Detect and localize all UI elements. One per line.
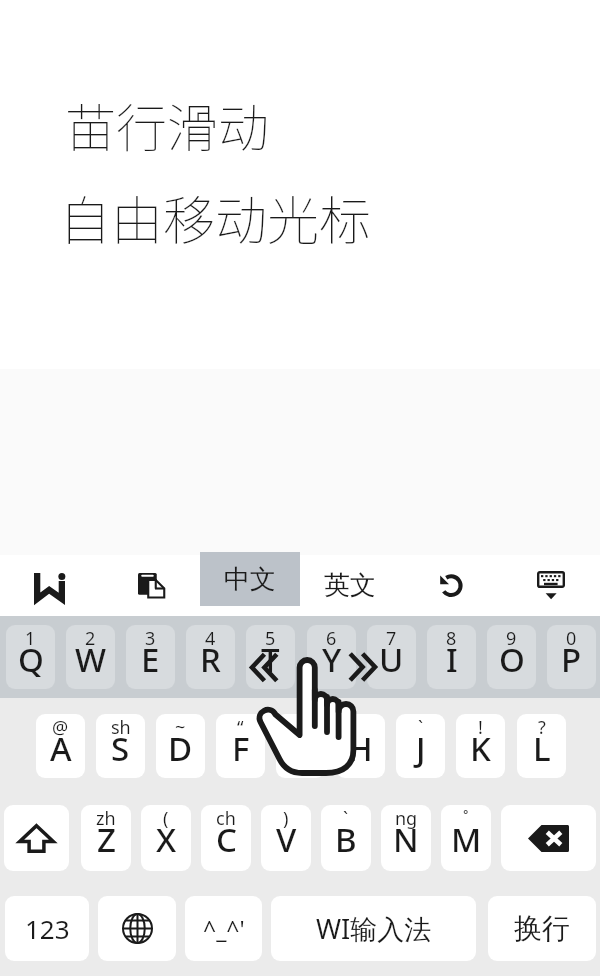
button[interactable]: @ [36, 714, 85, 778]
staticText: S [111, 726, 130, 771]
button[interactable]: 7 [367, 625, 416, 689]
staticText: ˚ [463, 806, 469, 831]
staticText: 苗行滑动 [65, 88, 270, 162]
button[interactable]: 4 [186, 625, 235, 689]
staticText: 0 [566, 626, 577, 651]
staticText: C [216, 817, 237, 862]
staticText: sh [111, 715, 131, 740]
button[interactable]: 中文 [200, 552, 300, 606]
staticText: WI输入法 [316, 910, 432, 947]
button[interactable]: ? [517, 714, 566, 778]
button[interactable]: 1 [6, 625, 55, 689]
staticText: E [141, 637, 160, 682]
staticText: I [446, 637, 458, 682]
staticText: K [470, 726, 491, 771]
button[interactable]: ^_^' [185, 896, 262, 961]
button[interactable]: 9 [487, 625, 536, 689]
staticText: A [50, 726, 72, 771]
staticText: L [533, 726, 551, 771]
button[interactable]: 8 [427, 625, 476, 689]
staticText: 4 [205, 626, 216, 651]
staticText: ^_^' [203, 913, 245, 944]
button[interactable]: ~ [156, 714, 205, 778]
staticText: D [168, 726, 193, 771]
staticText: M [451, 817, 482, 862]
staticText: ? [538, 715, 546, 740]
staticText: 1 [25, 626, 36, 651]
staticText: Q [18, 637, 44, 682]
button[interactable]: Clipboard [120, 555, 182, 616]
staticText: Z [97, 817, 116, 862]
staticText: U [379, 637, 404, 682]
button[interactable]: “ [216, 714, 265, 778]
button[interactable]: 3 [126, 625, 175, 689]
button[interactable]: zh [81, 805, 131, 871]
staticText: ng [395, 806, 418, 831]
button[interactable]: 6 [307, 625, 356, 689]
button[interactable]: ‘ [276, 714, 325, 778]
staticText: B [335, 817, 357, 862]
button[interactable]: Hide keyboard [520, 555, 582, 616]
staticText: ch [216, 806, 236, 831]
staticText: H [348, 726, 373, 771]
staticText: R [200, 637, 221, 682]
button[interactable]: WI输入法 [271, 896, 476, 961]
button[interactable]: ˋ [396, 714, 445, 778]
staticText: 中文 [224, 563, 276, 596]
staticText: ‘ [299, 715, 303, 740]
staticText: W [75, 637, 107, 682]
staticText: O [499, 637, 525, 682]
staticText: X [156, 817, 177, 862]
staticText: ( [163, 806, 169, 831]
button[interactable]: Input method logo [18, 555, 80, 616]
staticText: N [393, 817, 419, 862]
button[interactable]: sh [96, 714, 145, 778]
button[interactable]: ˚ [441, 805, 491, 871]
staticText: 换行 [514, 911, 570, 946]
staticText: ! [478, 715, 483, 740]
staticText: 英文 [324, 569, 376, 602]
button[interactable]: 英文 [310, 555, 390, 616]
button[interactable]: ! [456, 714, 505, 778]
staticText: 3 [145, 626, 156, 651]
button[interactable]: 5 [246, 625, 295, 689]
staticText: ˋ [418, 715, 424, 740]
button[interactable]: ˋ [321, 805, 371, 871]
button[interactable]: 2 [66, 625, 115, 689]
button[interactable]: ) [261, 805, 311, 871]
button[interactable]: ch [201, 805, 251, 871]
button[interactable]: ( [141, 805, 191, 871]
staticText: G [289, 726, 313, 771]
staticText: zh [96, 806, 116, 831]
staticText: T [261, 637, 280, 682]
staticText: J [416, 726, 426, 771]
staticText: 7 [386, 626, 397, 651]
staticText: 9 [506, 626, 517, 651]
button[interactable]: Switch language [98, 896, 176, 961]
button[interactable]: Backspace [501, 805, 596, 871]
button[interactable]: Shift [4, 805, 69, 871]
button[interactable]: 123 [5, 896, 89, 961]
staticText: 6 [326, 626, 337, 651]
staticText: V [276, 817, 297, 862]
button[interactable]: 0 [547, 625, 596, 689]
staticText: @ [52, 715, 69, 740]
staticText: 8 [446, 626, 457, 651]
button[interactable]: H [336, 714, 385, 778]
staticText: F [232, 726, 250, 771]
staticText: 123 [25, 911, 70, 946]
staticText: P [561, 637, 582, 682]
button[interactable]: 换行 [488, 896, 596, 961]
staticText: 自由移动光标 [59, 180, 372, 255]
staticText: Y [322, 637, 342, 682]
staticText: “ [237, 715, 244, 740]
staticText: ˋ [343, 806, 349, 831]
staticText: 5 [265, 626, 276, 651]
button[interactable]: ng [381, 805, 431, 871]
staticText: ~ [175, 715, 186, 740]
button[interactable]: Undo [420, 555, 482, 616]
staticText: ) [283, 806, 289, 831]
staticText: 2 [85, 626, 96, 651]
